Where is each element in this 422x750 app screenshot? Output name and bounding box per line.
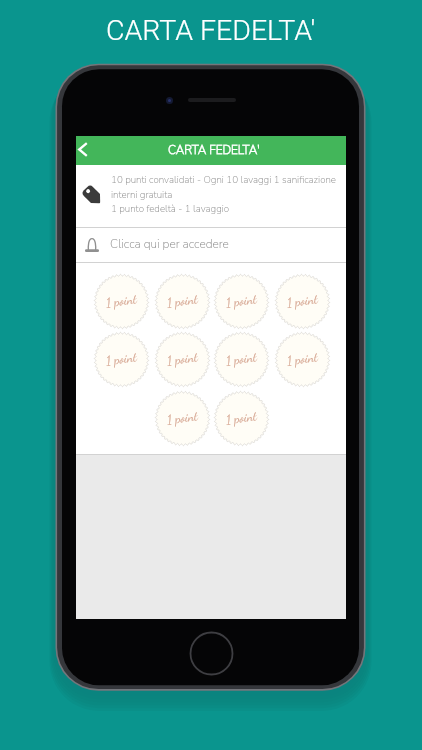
staticText: 10 punti convalidati - Ogni 10 lavaggi 1… <box>111 173 336 215</box>
button[interactable]: 1 point <box>275 274 330 329</box>
staticText: CARTA FEDELTA' <box>106 14 316 47</box>
staticText: 1 point <box>105 291 138 311</box>
staticText: 1 point <box>225 408 258 428</box>
staticText: Clicca qui per accedere <box>110 236 229 252</box>
staticText: 1 point <box>225 291 258 311</box>
staticText: 1 point <box>166 291 199 311</box>
button[interactable]: Back <box>76 138 102 162</box>
staticText: CARTA FEDELTA' <box>168 142 260 158</box>
button[interactable]: 1 point <box>214 391 269 446</box>
button[interactable]: 1 point <box>155 274 210 329</box>
staticText: 1 point <box>166 349 199 369</box>
button[interactable]: 1 point <box>155 332 210 387</box>
button[interactable]: 1 point <box>155 391 210 446</box>
button[interactable]: 1 point <box>94 274 149 329</box>
staticText: 1 point <box>286 349 319 369</box>
staticText: 1 point <box>166 408 199 428</box>
button[interactable]: CARTA FEDELTA' <box>76 136 346 165</box>
button[interactable]: 10 punti convalidati - Ogni 10 lavaggi 1… <box>76 165 346 227</box>
staticText: 1 point <box>286 291 319 311</box>
button[interactable]: 1 point <box>214 332 269 387</box>
staticText: 1 point <box>225 349 258 369</box>
button[interactable]: 1 point <box>214 274 269 329</box>
button[interactable]: 1 point <box>275 332 330 387</box>
button[interactable]: 1 point <box>94 332 149 387</box>
button[interactable]: Clicca qui per accedere <box>76 227 346 262</box>
staticText: 1 point <box>105 349 138 369</box>
